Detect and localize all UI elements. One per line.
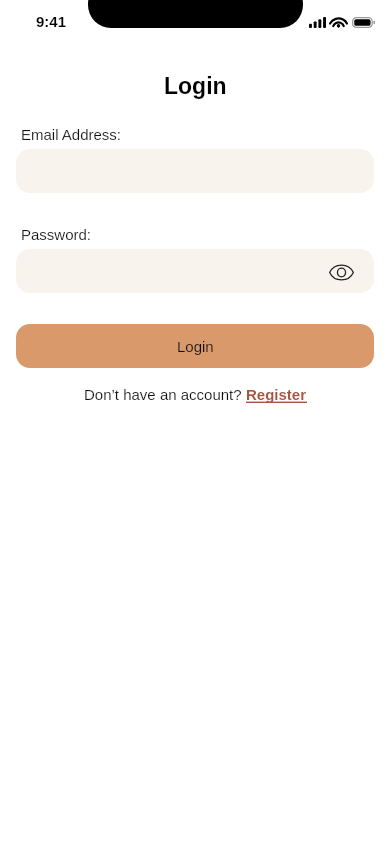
staticText: Email Address: bbox=[21, 126, 122, 143]
button[interactable]: Login bbox=[16, 324, 374, 368]
button[interactable]: Register bbox=[246, 386, 307, 403]
staticText: Register bbox=[246, 386, 307, 403]
staticText: Password: bbox=[21, 226, 92, 243]
staticText: Login bbox=[177, 338, 214, 355]
button[interactable]: Show password bbox=[326, 255, 358, 287]
staticText: 9:41 bbox=[36, 13, 67, 30]
button[interactable]: Show password bbox=[16, 249, 374, 293]
staticText: Login bbox=[164, 73, 227, 99]
staticText: Don’t have an account? bbox=[84, 386, 246, 403]
